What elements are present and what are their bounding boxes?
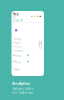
- staticText: Recent: [13, 49, 23, 53]
- staticText: Other: [15, 45, 23, 49]
- staticText: View all: [13, 19, 23, 22]
- staticText: Hi: [13, 15, 16, 19]
- staticText: Today: [13, 37, 20, 41]
- staticText: 24: [38, 41, 42, 45]
- staticText: Track your data in: [12, 87, 34, 90]
- staticText: Row: [15, 54, 21, 58]
- staticText: Main: [15, 41, 21, 45]
- staticText: Row: [15, 60, 21, 64]
- staticText: 12: [38, 45, 42, 49]
- staticText: Hey: [13, 12, 19, 16]
- staticText: Analytics: [12, 80, 30, 86]
- staticText: one dashboard: [12, 91, 33, 95]
